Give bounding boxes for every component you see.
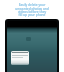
button[interactable] xyxy=(11,51,29,65)
staticText: Easily delete your unwanted photos and v… xyxy=(1,3,63,17)
